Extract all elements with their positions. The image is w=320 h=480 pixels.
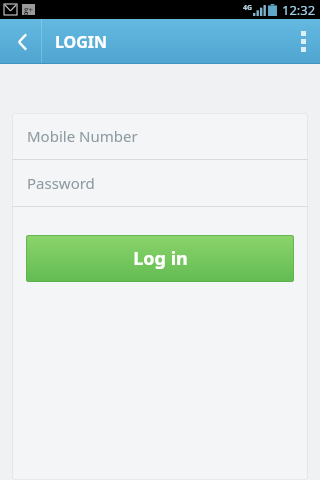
staticText: Log in xyxy=(133,246,188,271)
button[interactable]: Password xyxy=(12,160,308,206)
staticText: 12:32 xyxy=(282,1,316,19)
button[interactable]: Back xyxy=(0,19,44,64)
button[interactable]: Mobile Number xyxy=(12,113,308,159)
staticText: LOGIN xyxy=(55,31,108,53)
button[interactable]: More options xyxy=(286,19,320,64)
staticText: 4G xyxy=(243,3,253,13)
staticText: Password xyxy=(27,173,95,193)
button[interactable]: Log in xyxy=(26,235,294,282)
staticText: g+ xyxy=(24,4,33,15)
staticText: Mobile Number xyxy=(27,126,138,146)
